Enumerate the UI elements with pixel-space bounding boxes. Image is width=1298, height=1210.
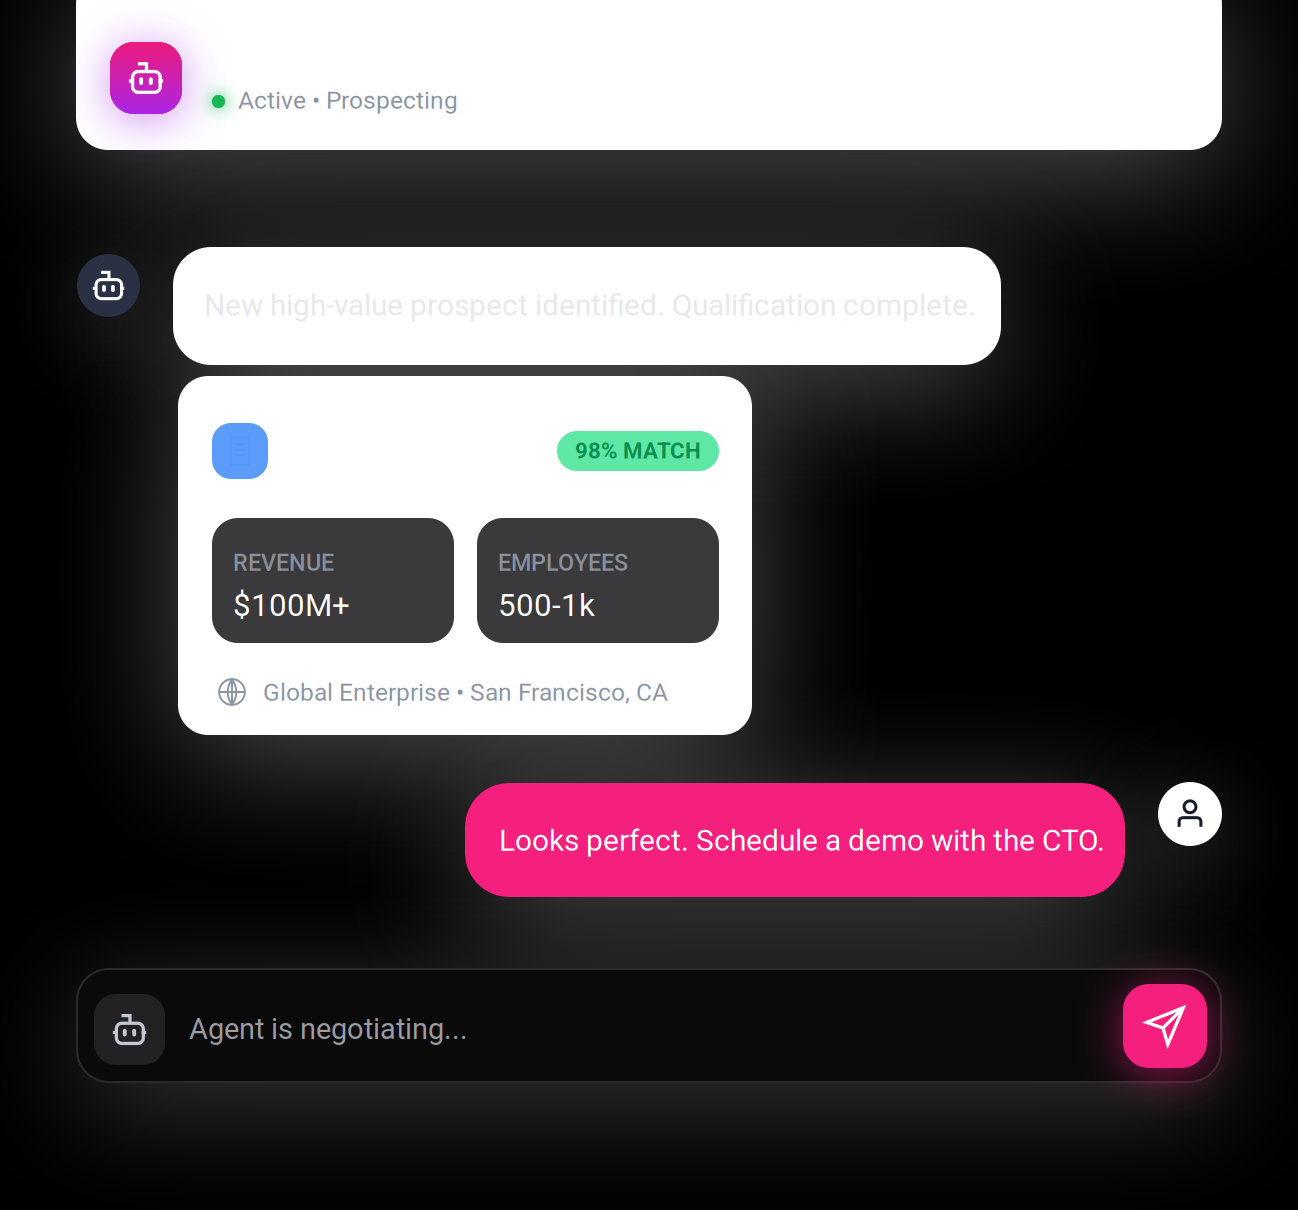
staticText: REVENUE	[233, 549, 334, 576]
button[interactable]: Agent	[77, 254, 140, 317]
staticText: EMPLOYEES	[498, 549, 628, 576]
button[interactable]: Send	[1123, 984, 1207, 1068]
button[interactable]: Looks perfect. Schedule a demo with the …	[465, 783, 1125, 897]
staticText: Global Enterprise • San Francisco, CA	[263, 678, 668, 707]
button[interactable]: You	[1158, 782, 1222, 846]
staticText: 98% MATCH	[575, 438, 701, 464]
staticText: Active • Prospecting	[238, 86, 458, 115]
staticText: $100M+	[233, 587, 350, 624]
staticText: 500-1k	[498, 587, 595, 624]
button[interactable]: 98% MATCH	[178, 376, 752, 735]
staticText: Looks perfect. Schedule a demo with the …	[499, 823, 1105, 858]
button[interactable]: New high-value prospect identified. Qual…	[173, 247, 1001, 365]
staticText: New high-value prospect identified. Qual…	[204, 288, 976, 323]
staticText: Agent is negotiating...	[189, 1012, 468, 1046]
button[interactable]: Agent	[94, 994, 165, 1065]
button[interactable]: Agent is negotiating...	[189, 994, 1089, 1064]
button[interactable]: Active • Prospecting	[76, 0, 1222, 150]
